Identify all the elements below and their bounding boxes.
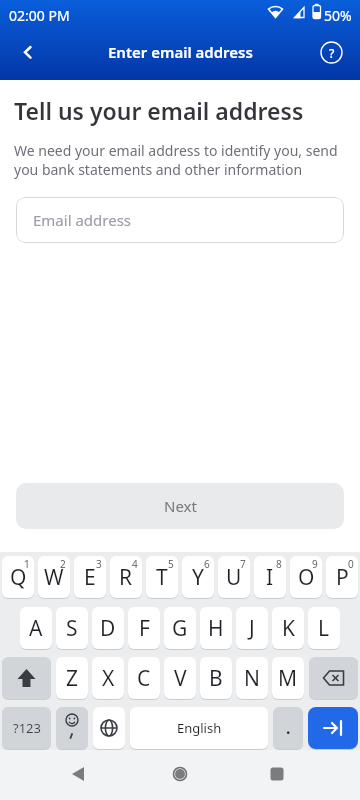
button[interactable]: W [38, 556, 70, 598]
staticText: U [226, 563, 242, 592]
button[interactable]: . [273, 707, 303, 749]
staticText: ? [329, 45, 335, 61]
button[interactable]: Email address [16, 197, 344, 243]
staticText: P [336, 563, 349, 592]
staticText: N [244, 664, 260, 693]
button[interactable]: Q [2, 556, 34, 598]
button[interactable] [8, 34, 46, 70]
button[interactable] [93, 707, 125, 749]
button[interactable]: Z [56, 657, 88, 699]
staticText: Next [164, 496, 197, 516]
staticText: 3 [96, 557, 102, 571]
staticText: H [208, 614, 224, 643]
staticText: A [29, 614, 43, 643]
staticText: G [172, 614, 188, 643]
staticText: 1 [24, 557, 30, 571]
button[interactable]: Y [182, 556, 214, 598]
button[interactable]: F [128, 607, 160, 649]
staticText: O [298, 563, 315, 592]
button[interactable]: I [254, 556, 286, 598]
button[interactable]: N [236, 657, 268, 699]
button[interactable]: G [164, 607, 196, 649]
staticText: We need your email address to identify y… [14, 141, 338, 179]
staticText: Tell us your email address [14, 95, 304, 126]
button[interactable]: A [20, 607, 52, 649]
button[interactable] [60, 756, 96, 792]
button[interactable] [56, 707, 88, 749]
staticText: K [282, 614, 295, 643]
button[interactable]: V [164, 657, 196, 699]
button[interactable] [259, 756, 295, 792]
staticText: 4 [132, 557, 138, 571]
staticText: Enter email address [108, 42, 253, 62]
button[interactable]: B [200, 657, 232, 699]
button[interactable] [162, 756, 198, 792]
staticText: I [266, 563, 274, 592]
staticText: X [102, 664, 115, 693]
button[interactable]: R [110, 556, 142, 598]
button[interactable]: E [74, 556, 106, 598]
button[interactable]: English [130, 707, 268, 749]
staticText: B [209, 664, 223, 693]
button[interactable] [309, 657, 358, 699]
staticText: 2 [60, 557, 66, 571]
staticText: Email address [33, 210, 132, 230]
staticText: S [66, 614, 78, 643]
staticText: C [137, 664, 151, 693]
button[interactable]: X [92, 657, 124, 699]
button[interactable]: K [272, 607, 304, 649]
staticText: F [139, 614, 150, 643]
staticText: M [278, 664, 298, 693]
staticText: 5 [168, 557, 174, 571]
staticText: Y [192, 563, 204, 592]
button[interactable]: Next [16, 483, 344, 529]
button[interactable]: C [128, 657, 160, 699]
button[interactable]: J [236, 607, 268, 649]
staticText: T [156, 563, 168, 592]
staticText: ?123 [13, 719, 41, 737]
button[interactable]: T [146, 556, 178, 598]
button[interactable]: M [272, 657, 304, 699]
staticText: R [119, 563, 133, 592]
staticText: 02:00 PM [9, 6, 70, 25]
button[interactable]: ? [319, 40, 344, 65]
button[interactable]: P [326, 556, 358, 598]
staticText: Q [10, 563, 27, 592]
staticText: 0 [348, 557, 354, 571]
staticText: 6 [204, 557, 210, 571]
staticText: J [249, 614, 255, 643]
button[interactable] [308, 707, 358, 749]
staticText: L [318, 614, 330, 643]
staticText: . [286, 717, 291, 739]
button[interactable]: ?123 [2, 707, 51, 749]
staticText: Z [66, 664, 79, 693]
button[interactable]: S [56, 607, 88, 649]
staticText: 50% [324, 6, 352, 25]
staticText: E [84, 563, 96, 592]
button[interactable]: H [200, 607, 232, 649]
button[interactable]: O [290, 556, 322, 598]
staticText: 8 [276, 557, 282, 571]
staticText: 7 [240, 557, 246, 571]
staticText: English [177, 719, 222, 737]
staticText: D [100, 614, 116, 643]
staticText: 9 [312, 557, 318, 571]
button[interactable]: D [92, 607, 124, 649]
staticText: V [174, 664, 187, 693]
button[interactable]: L [308, 607, 340, 649]
button[interactable] [2, 657, 51, 699]
staticText: W [44, 563, 64, 592]
button[interactable]: U [218, 556, 250, 598]
